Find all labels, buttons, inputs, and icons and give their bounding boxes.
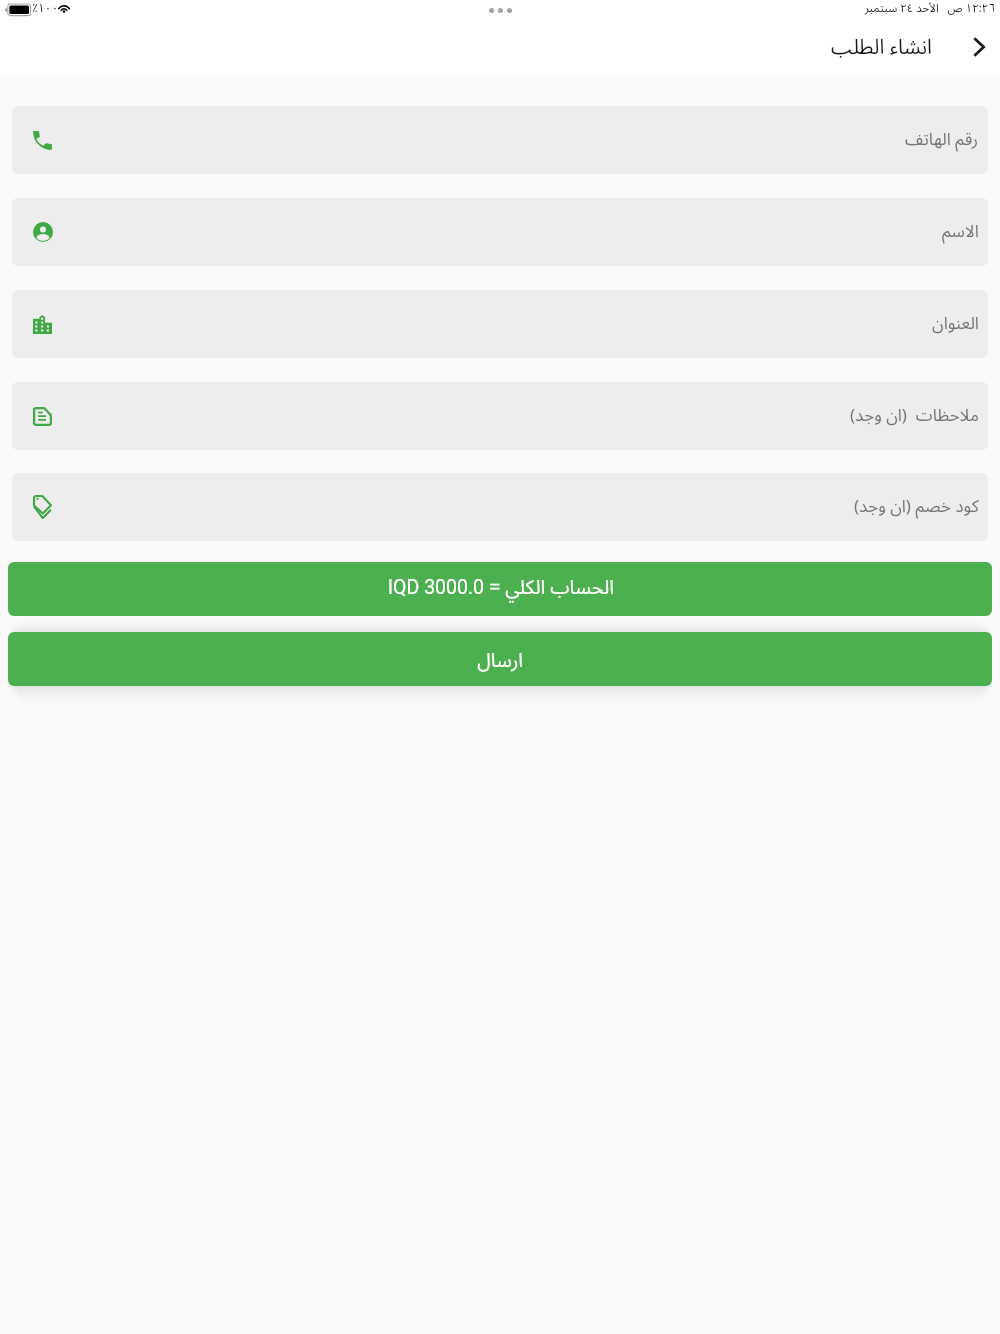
staticText: ارسال xyxy=(477,640,523,681)
staticText: كود خصم (ان وجد) xyxy=(854,489,979,525)
staticText: رقم الهاتف xyxy=(905,122,979,158)
button[interactable]: الحساب الكلي = IQD 3000.0 xyxy=(8,562,992,616)
button[interactable]: رقم الهاتف xyxy=(12,106,988,174)
staticText: ملاحظات (ان وجد) xyxy=(850,398,979,434)
staticText: ٪١٠٠ xyxy=(32,0,59,21)
staticText: العنوان xyxy=(932,306,979,342)
button[interactable]: ارسال xyxy=(8,632,992,686)
button[interactable]: الاسم xyxy=(12,198,988,266)
staticText: انشاء الطلب xyxy=(831,26,932,69)
staticText: الحساب الكلي = IQD 3000.0 xyxy=(387,567,614,608)
staticText: ١٢:٢٦ ص الأحد ٢٤ سبتمبر xyxy=(864,0,995,20)
staticText: الاسم xyxy=(942,214,979,250)
button[interactable]: كود خصم (ان وجد) xyxy=(12,473,988,541)
button[interactable]: العنوان xyxy=(12,290,988,358)
button[interactable]: ملاحظات (ان وجد) xyxy=(12,382,988,450)
button[interactable]: Back xyxy=(962,30,996,64)
